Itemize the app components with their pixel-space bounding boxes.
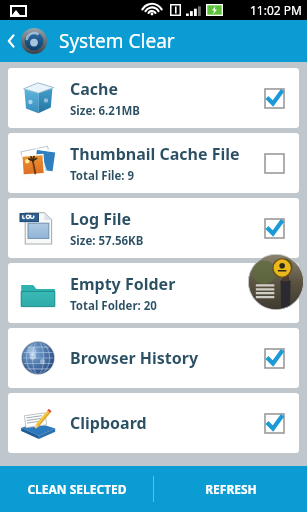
staticText: CLEAN SELECTED	[27, 481, 127, 497]
button[interactable]: Clipboard	[8, 393, 299, 453]
staticText: Thumbnail Cache File	[70, 143, 240, 165]
button[interactable]: CLEAN SELECTED	[0, 466, 153, 512]
staticText: Clipboard	[70, 412, 147, 434]
button[interactable]: Selected	[257, 81, 291, 115]
button[interactable]: Log File	[8, 198, 299, 258]
button[interactable]: Advertisement	[248, 254, 304, 310]
staticText: Cache	[70, 78, 119, 100]
button[interactable]: Cache	[8, 68, 299, 128]
staticText: 11:02 PM	[250, 2, 302, 18]
other: Back	[6, 31, 16, 51]
staticText: Size: 57.56KB	[70, 233, 144, 249]
button[interactable]: Selected	[257, 211, 291, 245]
button[interactable]: Browser History	[8, 328, 299, 388]
button[interactable]: REFRESH	[154, 466, 307, 512]
button[interactable]: Not selected	[257, 146, 291, 180]
button[interactable]: Selected	[257, 406, 291, 440]
staticText: Total Folder: 20	[70, 298, 157, 314]
button[interactable]: Back	[0, 20, 51, 62]
staticText: Empty Folder	[70, 273, 176, 295]
button[interactable]: Empty Folder	[8, 263, 299, 323]
staticText: System Clear	[59, 28, 175, 54]
staticText: Size: 6.21MB	[70, 103, 140, 119]
button[interactable]: Selected	[257, 341, 291, 375]
staticText: REFRESH	[205, 481, 257, 497]
staticText: Total File: 9	[70, 168, 135, 184]
staticText: Browser History	[70, 347, 199, 369]
staticText: Log File	[70, 208, 132, 230]
button[interactable]: Thumbnail Cache File	[8, 133, 299, 193]
